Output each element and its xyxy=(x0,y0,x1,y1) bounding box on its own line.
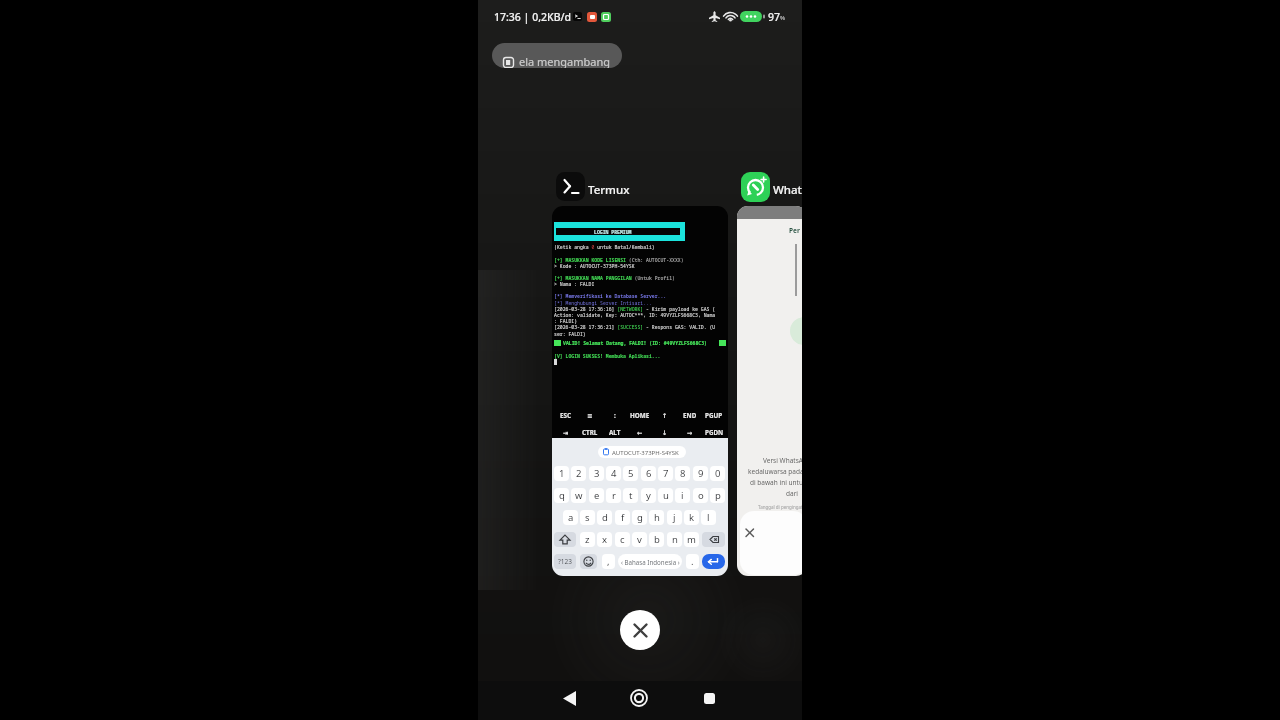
button[interactable] xyxy=(556,172,585,201)
button[interactable] xyxy=(556,685,582,711)
staticText: kedaluwarsa pada tan xyxy=(748,467,802,476)
staticText: 3 xyxy=(594,467,600,480)
staticText: s xyxy=(585,511,590,524)
staticText: ela mengambang xyxy=(519,54,611,68)
staticText: u xyxy=(663,489,669,502)
staticText: j xyxy=(673,511,676,524)
button[interactable] xyxy=(741,172,770,202)
staticText: 6 xyxy=(646,467,652,480)
staticText: [+] MASUKKAN KODE LISENSI (Cth: AUTOCUT-… xyxy=(554,257,684,264)
staticText: ← xyxy=(637,429,643,436)
staticText: di bawah ini untuk me xyxy=(750,478,802,487)
staticText: d xyxy=(602,511,608,524)
staticText: v xyxy=(637,533,642,546)
staticText: [2026-03-28 17:36:21] [SUCCESS] - Respon… xyxy=(554,324,716,331)
button[interactable]: LOGIN PREMIUM xyxy=(552,206,728,576)
staticText: c xyxy=(620,533,625,546)
staticText: ↑ xyxy=(662,412,668,419)
button[interactable] xyxy=(620,610,660,650)
staticText: VALID! Selamat Datang, FALDI! (ID: #49VY… xyxy=(563,340,707,347)
staticText: [*] Menghubungi Server Intisari... xyxy=(554,300,652,307)
staticText: (Ketik angka 0 untuk Batal/Kembali) xyxy=(554,244,655,251)
staticText: a xyxy=(568,511,574,524)
staticText: 2 xyxy=(576,467,582,480)
staticText: 4 xyxy=(611,467,617,480)
staticText: ↓ xyxy=(662,429,668,436)
button[interactable] xyxy=(626,685,652,711)
staticText: [V] LOGIN SUKSES! Membuka Aplikasi... xyxy=(554,353,661,360)
button[interactable]: ela mengambang xyxy=(492,43,622,68)
staticText: HOME xyxy=(630,411,650,420)
staticText: → xyxy=(687,429,693,436)
staticText: p xyxy=(715,489,721,502)
staticText: ⇥ xyxy=(563,429,569,436)
staticText: 7 xyxy=(663,467,669,480)
staticText: Versi WhatsApp xyxy=(763,456,802,465)
staticText: e xyxy=(594,489,600,502)
staticText: m xyxy=(687,533,696,546)
staticText: PGDN xyxy=(705,428,724,437)
staticText: 8 xyxy=(680,467,686,480)
staticText: n xyxy=(672,533,678,546)
staticText: [2026-03-28 17:36:16] [NETWORK] - Kirim … xyxy=(554,306,716,313)
staticText: CTRL xyxy=(582,428,598,437)
staticText: ‹ Bahasa Indonesia › xyxy=(621,558,680,566)
staticText: Per xyxy=(789,226,800,235)
staticText: ALT xyxy=(609,428,621,437)
staticText: : FALDI) xyxy=(554,318,578,325)
staticText: w xyxy=(575,489,583,502)
staticText: ser: FALDI) xyxy=(554,331,586,338)
staticText: 9 xyxy=(698,467,704,480)
staticText: , xyxy=(607,555,610,568)
button[interactable]: Per xyxy=(737,206,802,576)
staticText: WhatsApp xyxy=(773,182,802,198)
staticText: f xyxy=(621,511,625,524)
staticText: END xyxy=(683,411,697,420)
staticText: y xyxy=(646,489,651,502)
staticText: AUTOCUT-373PH-S4YSK xyxy=(612,449,679,457)
staticText: > Kode : AUTOCUT-373PH-54YSK xyxy=(554,263,635,270)
staticText: >_ xyxy=(575,13,581,19)
staticText: x xyxy=(602,533,608,546)
staticText: [*] Memverifikasi ke Database Server... xyxy=(554,293,667,300)
staticText: r xyxy=(612,489,616,502)
staticText: Tanggal di pengingat xyxy=(758,504,802,510)
staticText: Action: validate, Key: AUTOC***, ID: 49V… xyxy=(554,312,716,319)
staticText: LOGIN PREMIUM xyxy=(594,229,632,236)
staticText: > Nama : FALDI xyxy=(554,281,595,288)
staticText: PGUP xyxy=(705,411,723,420)
staticText: ?123 xyxy=(558,557,572,566)
staticText: z xyxy=(585,533,590,546)
staticText: k xyxy=(689,511,695,524)
staticText: t xyxy=(629,489,633,502)
staticText: 0 xyxy=(715,467,721,480)
staticText: [+] MASUKKAN NAMA PANGGILAN (Untuk Profi… xyxy=(554,275,675,282)
staticText: i xyxy=(681,489,684,502)
staticText: 17:36 | 0,2KB/d xyxy=(494,10,572,24)
staticText: ≡ xyxy=(587,412,593,419)
staticText: dari xyxy=(786,489,799,498)
staticText: ESC xyxy=(560,411,572,420)
button[interactable] xyxy=(696,685,722,711)
staticText: l xyxy=(707,511,710,524)
staticText: b xyxy=(654,533,660,546)
staticText: g xyxy=(637,511,643,524)
staticText: o xyxy=(698,489,704,502)
staticText: q xyxy=(559,489,565,502)
staticText: 5 xyxy=(628,467,634,480)
staticText: : xyxy=(614,411,616,420)
staticText: . xyxy=(691,555,694,568)
staticText: 1 xyxy=(559,467,565,480)
staticText: 97 xyxy=(768,10,781,24)
staticText: Termux xyxy=(588,182,630,198)
staticText: h xyxy=(654,511,660,524)
staticText: % xyxy=(780,14,786,22)
